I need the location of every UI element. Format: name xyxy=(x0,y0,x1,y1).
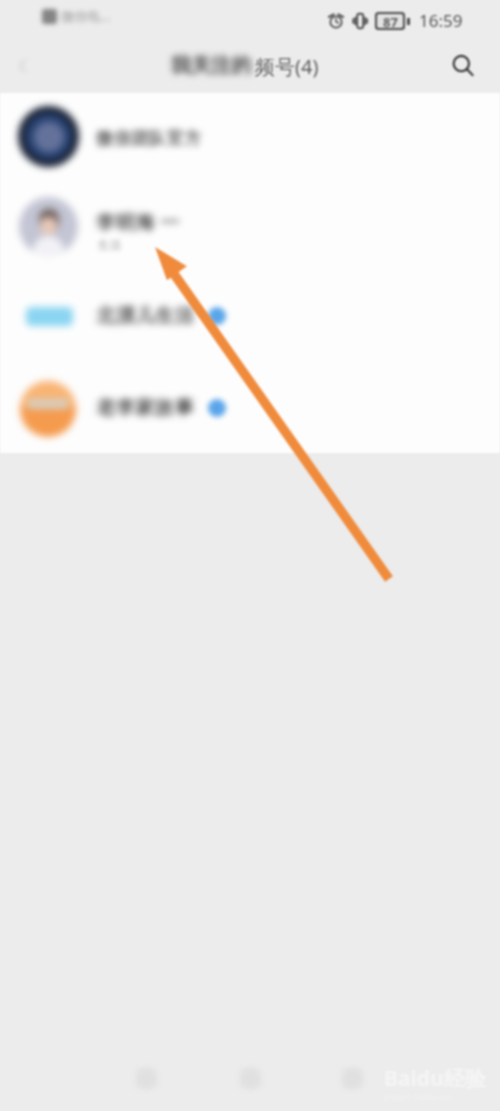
staticText: 微信电… xyxy=(61,7,111,25)
staticText: 生活 xyxy=(98,238,121,252)
staticText: 老李家故事 xyxy=(96,396,194,420)
staticText: 微信团队官方 xyxy=(96,128,202,149)
button[interactable]: Recent apps xyxy=(331,1057,373,1099)
staticText: 87 xyxy=(383,14,398,27)
button[interactable]: Home xyxy=(229,1057,271,1099)
button[interactable]: 李明海 一 xyxy=(0,183,500,273)
staticText: 16:59 xyxy=(419,9,463,32)
button[interactable]: Search xyxy=(445,48,481,84)
staticText: 我关注的 xyxy=(171,53,251,78)
button[interactable]: 微信团队官方 xyxy=(0,93,500,183)
button[interactable]: 老李家故事 xyxy=(0,363,500,453)
staticText: 北漂儿生活 xyxy=(96,304,194,328)
staticText: 频号(4) xyxy=(255,53,319,80)
button[interactable]: 北漂儿生活 xyxy=(0,273,500,363)
button[interactable]: Back xyxy=(125,1057,167,1099)
staticText: 李明海 一 xyxy=(96,209,180,235)
